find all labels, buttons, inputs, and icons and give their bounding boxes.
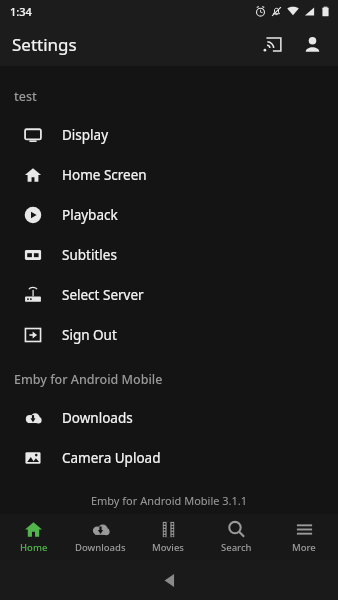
staticText: Playback (62, 206, 118, 224)
button[interactable]: More (270, 514, 338, 560)
staticText: More (292, 541, 316, 554)
staticText: Home (20, 541, 48, 554)
staticText: test (14, 88, 37, 105)
button[interactable]: Home Screen (0, 155, 338, 195)
staticText: Emby for Android Mobile (14, 371, 163, 388)
staticText: Select Server (62, 286, 144, 304)
button[interactable]: Home (0, 514, 67, 560)
staticText: Home Screen (62, 166, 147, 184)
staticText: Movies (152, 541, 184, 554)
button[interactable]: Sign Out (0, 315, 338, 355)
staticText: Display (62, 126, 109, 144)
button[interactable]: Subtitles (0, 235, 338, 275)
staticText: Downloads (62, 409, 133, 427)
button[interactable]: Select Server (0, 275, 338, 315)
button[interactable]: Camera Upload (0, 438, 338, 478)
staticText: Emby for Android Mobile 3.1.1 (0, 493, 338, 508)
staticText: Downloads (75, 541, 126, 554)
button[interactable]: Search (202, 514, 270, 560)
button[interactable]: Display (0, 115, 338, 155)
button[interactable]: Playback (0, 195, 338, 235)
staticText: Search (221, 541, 252, 554)
button[interactable]: Movies (134, 514, 202, 560)
staticText: Sign Out (62, 326, 117, 344)
staticText: 1:34 (10, 4, 32, 19)
button[interactable]: Cast (252, 24, 292, 64)
button[interactable]: Downloads (67, 514, 134, 560)
staticText: Settings (12, 33, 77, 56)
staticText: Subtitles (62, 246, 117, 264)
staticText: Camera Upload (62, 449, 161, 467)
button[interactable]: Back (152, 563, 186, 597)
button[interactable]: Account (292, 24, 332, 64)
button[interactable]: Downloads (0, 398, 338, 438)
